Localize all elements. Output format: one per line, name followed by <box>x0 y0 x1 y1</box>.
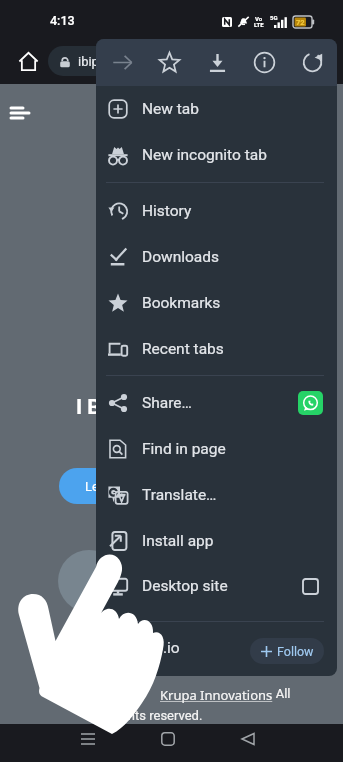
staticText: Share… <box>142 394 192 412</box>
button[interactable]: Downloads <box>96 234 337 280</box>
button[interactable]: Download page <box>195 39 239 86</box>
button[interactable]: Follow <box>250 638 324 664</box>
staticText: History <box>142 202 192 220</box>
staticText: Install app <box>142 532 214 550</box>
button[interactable]: Home <box>145 720 191 758</box>
staticText: Find in page <box>142 440 226 458</box>
button[interactable]: Forward <box>100 39 144 86</box>
button[interactable]: Recent apps <box>65 720 111 758</box>
staticText: ibip.io <box>138 639 180 657</box>
button[interactable]: ibip.io <box>48 46 218 76</box>
button[interactable]: Reload <box>290 39 334 86</box>
button[interactable]: Find in page <box>96 426 337 472</box>
button[interactable]: Site menu <box>8 102 34 128</box>
staticText: Desktop site <box>142 577 228 595</box>
button[interactable]: Install app <box>96 518 337 564</box>
staticText: I B I P <box>76 395 131 420</box>
button[interactable]: Share to WhatsApp <box>298 391 323 415</box>
button[interactable]: Translate… <box>96 472 337 518</box>
staticText: Learn more <box>85 479 151 494</box>
staticText: 5G <box>270 14 278 21</box>
staticText: . All <box>269 686 291 701</box>
staticText: New incognito tab <box>142 146 267 164</box>
button[interactable]: Bookmark <box>147 39 191 86</box>
button[interactable]: New incognito tab <box>96 132 337 178</box>
button[interactable]: Learn more <box>59 468 177 504</box>
button[interactable]: Share… <box>96 380 337 426</box>
button[interactable]: History <box>96 188 337 234</box>
staticText: Downloads <box>142 248 220 266</box>
button[interactable]: Home <box>8 41 48 81</box>
staticText: Vo <box>255 15 263 22</box>
staticText: 4:13 <box>50 13 75 28</box>
staticText: Krupa Innovations <box>160 686 273 704</box>
staticText: Follow <box>277 644 314 659</box>
staticText: 72 <box>296 18 305 27</box>
staticText: LTE <box>254 21 264 28</box>
button[interactable]: New tab <box>96 86 337 132</box>
staticText: rights reserved. <box>113 708 203 723</box>
button[interactable]: Bookmarks <box>96 280 337 326</box>
button[interactable]: Desktop site <box>96 563 337 609</box>
staticText: Translate… <box>142 486 217 504</box>
button[interactable]: Recent tabs <box>96 326 337 372</box>
staticText: Bookmarks <box>142 294 221 312</box>
button[interactable]: Back <box>225 720 271 758</box>
button[interactable]: Page info <box>242 39 286 86</box>
staticText: Recent tabs <box>142 340 224 358</box>
staticText: New tab <box>142 100 199 118</box>
staticText: ibip.io <box>78 54 113 69</box>
